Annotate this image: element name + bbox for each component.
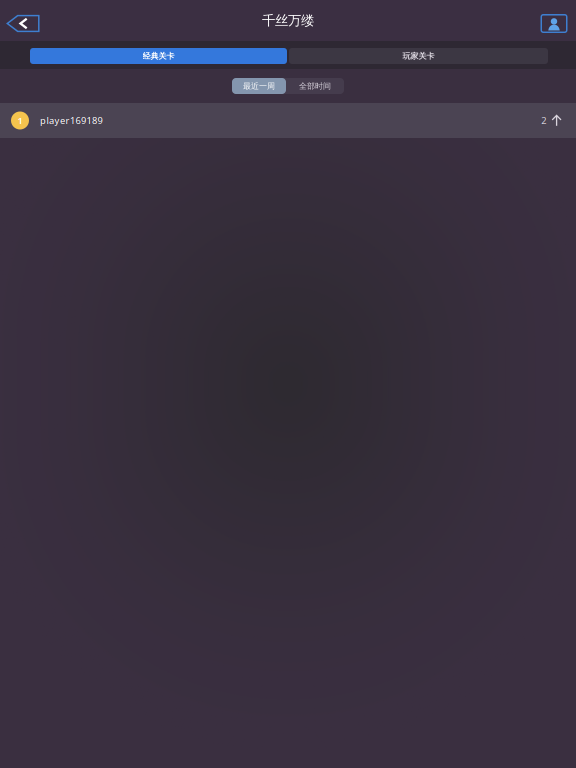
staticText: 最近一周 (243, 81, 275, 91)
button[interactable]: 最近一周 (232, 78, 286, 94)
button[interactable]: Profile (541, 3, 567, 37)
staticText: 1 (17, 114, 22, 127)
staticText: 2 (541, 114, 546, 127)
staticText: 千丝万缕 (262, 12, 314, 29)
button[interactable]: 全部时间 (286, 78, 344, 94)
staticText: 玩家关卡 (402, 51, 434, 61)
button[interactable]: 玩家关卡 (289, 48, 548, 64)
button[interactable]: 1 (0, 103, 576, 138)
button[interactable]: Back (6, 3, 40, 37)
staticText: player169189 (40, 114, 102, 127)
button[interactable]: 经典关卡 (30, 48, 287, 64)
staticText: 经典关卡 (142, 51, 174, 61)
staticText: 全部时间 (299, 81, 331, 91)
